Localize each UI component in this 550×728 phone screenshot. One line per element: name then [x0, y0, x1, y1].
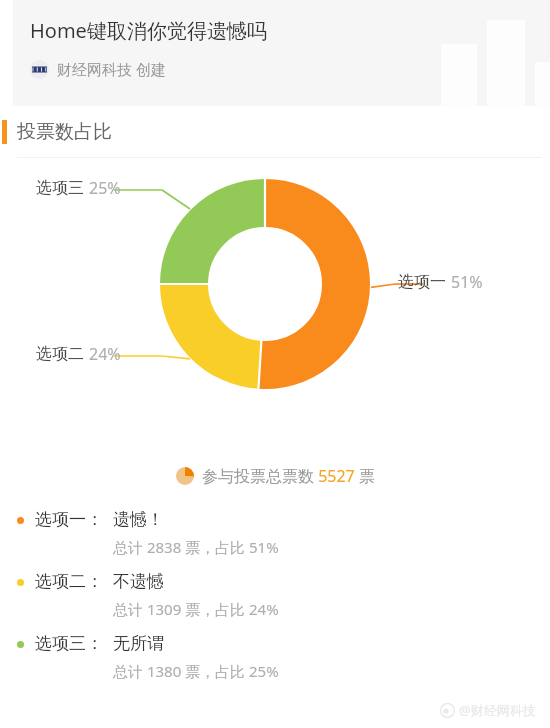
staticText: 投票数占比 — [17, 120, 112, 144]
staticText: 25% — [89, 177, 121, 199]
staticText: 选项二： — [35, 571, 103, 592]
staticText: 选项一： — [35, 509, 103, 530]
staticText: 遗憾！ — [113, 509, 164, 530]
staticText: 无所谓 — [113, 633, 164, 654]
other: Votes pie — [176, 467, 194, 485]
staticText: 总计 2838 票，占比 51% — [113, 537, 279, 557]
staticText: 选项二 — [36, 344, 84, 364]
button[interactable]: 选项三： — [0, 626, 550, 688]
staticText: 参与投票总票数 5527 票 — [202, 465, 375, 487]
staticText: 不遗憾 — [113, 571, 164, 592]
staticText: 选项三 — [36, 178, 84, 198]
staticText: @财经网科技 — [459, 701, 536, 719]
staticText: 选项三： — [35, 633, 103, 654]
staticText: 总计 1380 票，占比 25% — [113, 661, 279, 681]
staticText: Home键取消你觉得遗憾吗 — [30, 17, 267, 44]
staticText: 财经网科技 创建 — [57, 59, 166, 79]
staticText: 51% — [451, 271, 483, 293]
staticText: 选项一 — [398, 272, 446, 292]
button[interactable]: 选项二： — [0, 564, 550, 626]
staticText: 总计 1309 票，占比 24% — [113, 599, 279, 619]
button[interactable]: 选项三 — [36, 177, 121, 199]
button[interactable]: 选项一 — [398, 271, 483, 293]
button[interactable]: 选项一： — [0, 502, 550, 564]
button[interactable]: 选项二 — [36, 343, 121, 365]
staticText: 24% — [89, 343, 121, 365]
button[interactable]: Weibo watermark — [440, 701, 536, 719]
button[interactable]: Home键取消你觉得遗憾吗 — [13, 0, 550, 106]
